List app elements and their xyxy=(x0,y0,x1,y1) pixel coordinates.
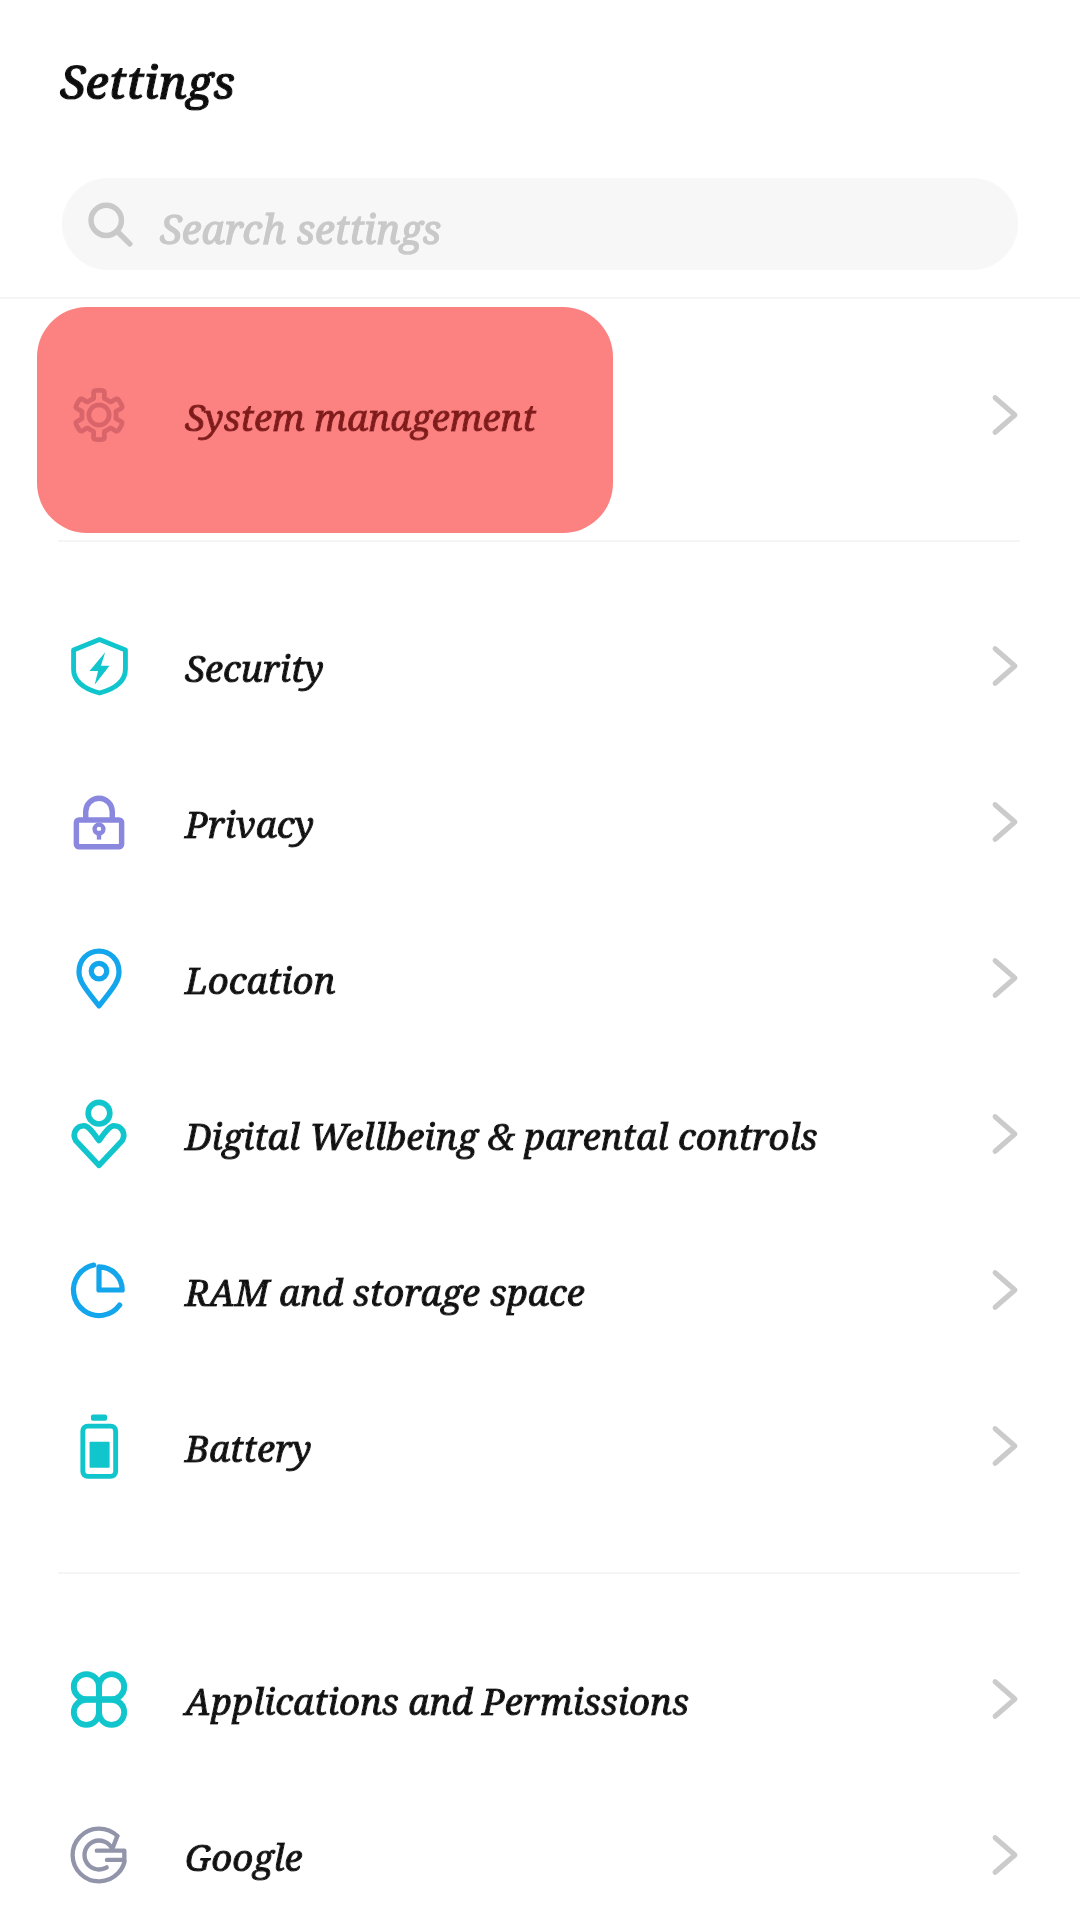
button[interactable]: Battery xyxy=(0,1368,1080,1524)
staticText: Location xyxy=(185,955,336,1005)
button[interactable]: System management xyxy=(0,307,1080,533)
button[interactable]: Security xyxy=(0,588,1080,744)
other: Search xyxy=(86,201,132,247)
button[interactable]: Applications and Permissions xyxy=(0,1621,1080,1777)
staticText: Settings xyxy=(60,50,235,113)
staticText: Battery xyxy=(185,1423,312,1473)
staticText: Battery xyxy=(185,1423,312,1473)
button[interactable]: Digital Wellbeing & parental controls xyxy=(0,1056,1080,1212)
staticText: Location xyxy=(185,955,336,1005)
staticText: Google xyxy=(185,1832,303,1882)
staticText: Privacy xyxy=(185,799,314,849)
staticText: Search settings xyxy=(160,201,442,255)
button[interactable]: RAM and storage space xyxy=(0,1212,1080,1368)
staticText: Digital Wellbeing & parental controls xyxy=(185,1111,818,1161)
staticText: Search settings xyxy=(160,201,442,255)
staticText: Security xyxy=(185,643,324,693)
button[interactable]: Google xyxy=(0,1777,1080,1920)
staticText: Security xyxy=(185,643,324,693)
staticText: Privacy xyxy=(185,799,314,849)
button[interactable]: Search xyxy=(62,178,1018,270)
button[interactable]: Location xyxy=(0,900,1080,1056)
button[interactable]: Privacy xyxy=(0,744,1080,900)
staticText: RAM and storage space xyxy=(185,1267,585,1317)
staticText: Settings xyxy=(60,50,235,113)
staticText: Applications and Permissions xyxy=(185,1676,689,1726)
staticText: RAM and storage space xyxy=(185,1267,585,1317)
staticText: System management xyxy=(185,392,536,442)
staticText: Applications and Permissions xyxy=(185,1676,689,1726)
staticText: Digital Wellbeing & parental controls xyxy=(185,1111,818,1161)
staticText: System management xyxy=(185,392,536,442)
staticText: Google xyxy=(185,1832,303,1882)
